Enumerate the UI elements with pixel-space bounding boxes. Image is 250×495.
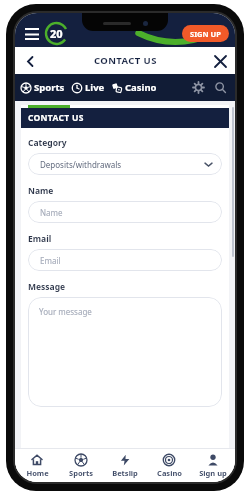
button[interactable]: Your message <box>28 297 222 407</box>
staticText: Sports <box>34 81 65 94</box>
staticText: Name <box>28 185 54 197</box>
staticText: Message <box>28 281 66 293</box>
button[interactable]: Deposits/withdrawals <box>28 153 222 175</box>
button[interactable]: Name <box>28 201 222 223</box>
button[interactable]: Menu <box>22 24 42 44</box>
staticText: Home <box>26 468 49 478</box>
staticText: CONTACT US <box>94 54 157 67</box>
staticText: CONTACT US <box>28 112 84 124</box>
button[interactable]: Casino <box>112 78 157 97</box>
button[interactable]: Live <box>72 78 105 97</box>
staticText: SIGN UP <box>190 29 221 39</box>
staticText: Name <box>40 207 63 218</box>
button[interactable]: Email <box>28 249 222 271</box>
button[interactable]: Settings <box>190 79 207 96</box>
staticText: Sports <box>69 468 93 478</box>
staticText: Your message <box>39 306 92 317</box>
staticText: Category <box>28 137 67 149</box>
button[interactable]: Sports <box>59 452 103 480</box>
staticText: Sign up <box>199 468 227 478</box>
button[interactable]: Close <box>209 50 231 72</box>
button[interactable]: Search <box>212 79 229 96</box>
staticText: 20 <box>50 26 63 41</box>
button[interactable]: Betslip <box>103 452 147 480</box>
staticText: Betslip <box>112 468 138 478</box>
staticText: Casino <box>125 81 157 94</box>
button[interactable]: Sports <box>21 78 65 97</box>
button[interactable]: Home logo <box>46 23 67 44</box>
button[interactable]: Casino <box>147 452 191 480</box>
staticText: Deposits/withdrawals <box>40 159 122 170</box>
button[interactable]: Home <box>15 452 59 480</box>
button[interactable]: SIGN UP <box>182 25 229 42</box>
staticText: Email <box>28 233 52 245</box>
staticText: Email <box>40 255 61 266</box>
staticText: Live <box>85 81 105 94</box>
staticText: Casino <box>157 468 182 478</box>
button[interactable]: Back <box>19 50 41 72</box>
button[interactable]: Sign up <box>191 452 235 480</box>
